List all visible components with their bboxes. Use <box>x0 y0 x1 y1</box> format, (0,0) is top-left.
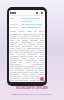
staticText: Author <box>10 23 21 26</box>
button[interactable]: Add <box>40 77 44 81</box>
button[interactable]: Source <box>10 26 44 29</box>
staticText: Understanding the basic ideas <box>21 17 44 23</box>
button[interactable]: Author <box>10 23 44 26</box>
staticText: Jane Doe and friends <box>21 23 44 26</box>
staticText: Title <box>10 17 21 20</box>
button[interactable]: Title <box>10 17 44 23</box>
button[interactable]: Search <box>9 10 45 15</box>
staticText: Lorem ipsum dolor sit amet consectetur a… <box>10 30 44 82</box>
staticText: HIGHLIGHTS OFFLINE <box>16 86 49 90</box>
staticText: Read anywhere without connection <box>12 92 52 95</box>
staticText: Daily digest weekly <box>21 26 44 29</box>
staticText: Source <box>10 26 21 29</box>
